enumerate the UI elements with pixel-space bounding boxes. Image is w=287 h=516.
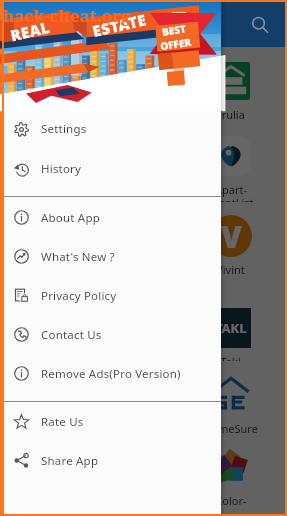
button[interactable]: Color- [94, 433, 185, 513]
button[interactable]: HomeSure [185, 361, 276, 433]
staticText: TAKL [32, 319, 64, 337]
button[interactable]: Contact Us [2, 315, 221, 354]
staticText: Trulia [216, 107, 245, 122]
staticText: Takl [220, 354, 241, 361]
staticText: Apart- mentList [25, 182, 71, 202]
staticText: Apart- mentList [117, 182, 163, 202]
button[interactable]: Trulia [2, 47, 94, 122]
button[interactable]: Share App [2, 441, 221, 480]
staticText: History [41, 161, 82, 177]
button[interactable]: What's New ? [2, 237, 221, 276]
staticText: hack-cheat.org [3, 4, 131, 27]
button[interactable]: Search [243, 8, 277, 42]
staticText: OFFER [159, 34, 193, 53]
staticText: TAKL [215, 319, 247, 337]
button[interactable]: TAKL [94, 294, 185, 361]
button[interactable]: Trulia [94, 47, 185, 122]
staticText: About App [41, 210, 100, 226]
button[interactable]: Settings [2, 109, 221, 149]
button[interactable]: Rate Us [2, 402, 221, 441]
staticText: Share App [41, 453, 99, 469]
button[interactable]: Apart- mentList [185, 122, 276, 202]
button[interactable]: Remove Ads(Pro Version) [2, 354, 221, 393]
button[interactable]: V [2, 202, 94, 294]
staticText: Vivint [216, 262, 245, 277]
button[interactable]: About App [2, 198, 221, 237]
button[interactable]: Trulia [185, 47, 276, 122]
staticText: Settings [41, 121, 87, 137]
button[interactable]: HomeSure [2, 361, 94, 433]
button[interactable]: Apart- mentList [94, 122, 185, 202]
staticText: What's New ? [41, 249, 115, 265]
button[interactable]: V [185, 202, 276, 294]
staticText: Rate Us [41, 414, 84, 430]
staticText: Remove Ads(Pro Version) [41, 366, 181, 382]
button[interactable]: TAKL [2, 294, 94, 361]
staticText: HomeSure [203, 421, 258, 433]
staticText: REAL [8, 17, 53, 45]
staticText: Contact Us [41, 327, 102, 343]
button[interactable]: Apart- mentList [2, 122, 94, 202]
button[interactable]: Color- [2, 433, 94, 513]
staticText: Privacy Policy [41, 288, 117, 304]
button[interactable]: TAKL [185, 294, 276, 361]
staticText: Apart- mentList [208, 182, 254, 202]
staticText: BEST [161, 21, 187, 39]
button[interactable]: V [94, 202, 185, 294]
staticText: Color- [215, 493, 247, 508]
button[interactable]: History [2, 149, 221, 189]
button[interactable]: HomeSure [94, 361, 185, 433]
staticText: V [221, 216, 242, 257]
staticText: HomeSure [21, 421, 76, 433]
staticText: V [38, 216, 59, 257]
staticText: ESTATE [90, 9, 149, 41]
button[interactable]: Privacy Policy [2, 276, 221, 315]
button[interactable]: Color- [185, 433, 276, 513]
